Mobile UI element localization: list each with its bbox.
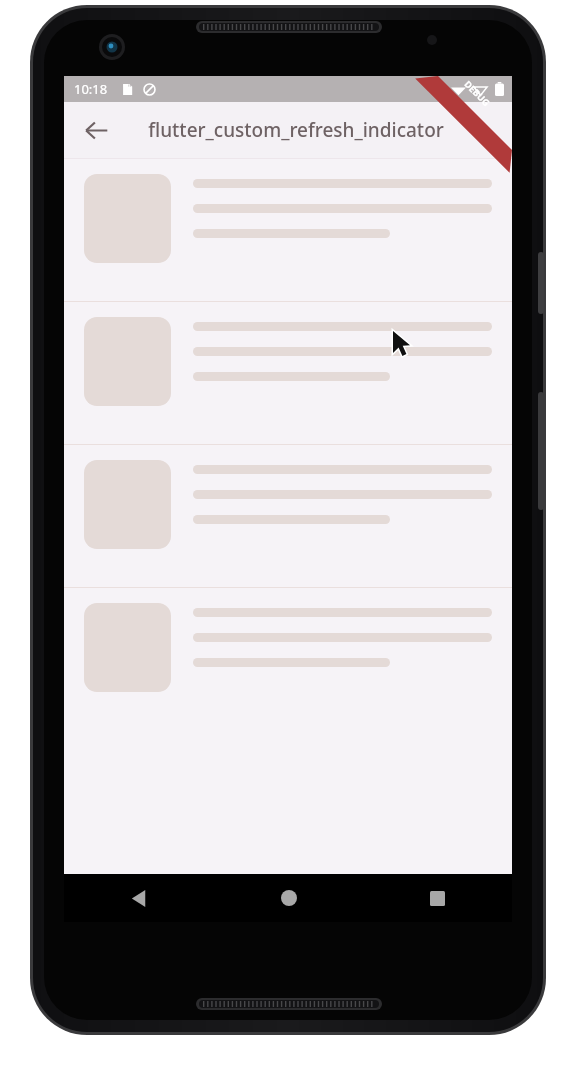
button[interactable] xyxy=(64,445,512,587)
button[interactable] xyxy=(64,302,512,444)
staticText: 10:18 xyxy=(74,80,108,98)
button[interactable] xyxy=(64,159,512,301)
button[interactable]: Back xyxy=(72,106,120,154)
staticText: flutter_custom_refresh_indicator xyxy=(148,117,444,143)
staticText: DEBUG xyxy=(462,78,493,108)
button[interactable]: Home xyxy=(214,874,363,922)
button[interactable]: Recent apps xyxy=(363,874,512,922)
button[interactable] xyxy=(64,588,512,730)
button[interactable]: Back xyxy=(64,874,214,922)
